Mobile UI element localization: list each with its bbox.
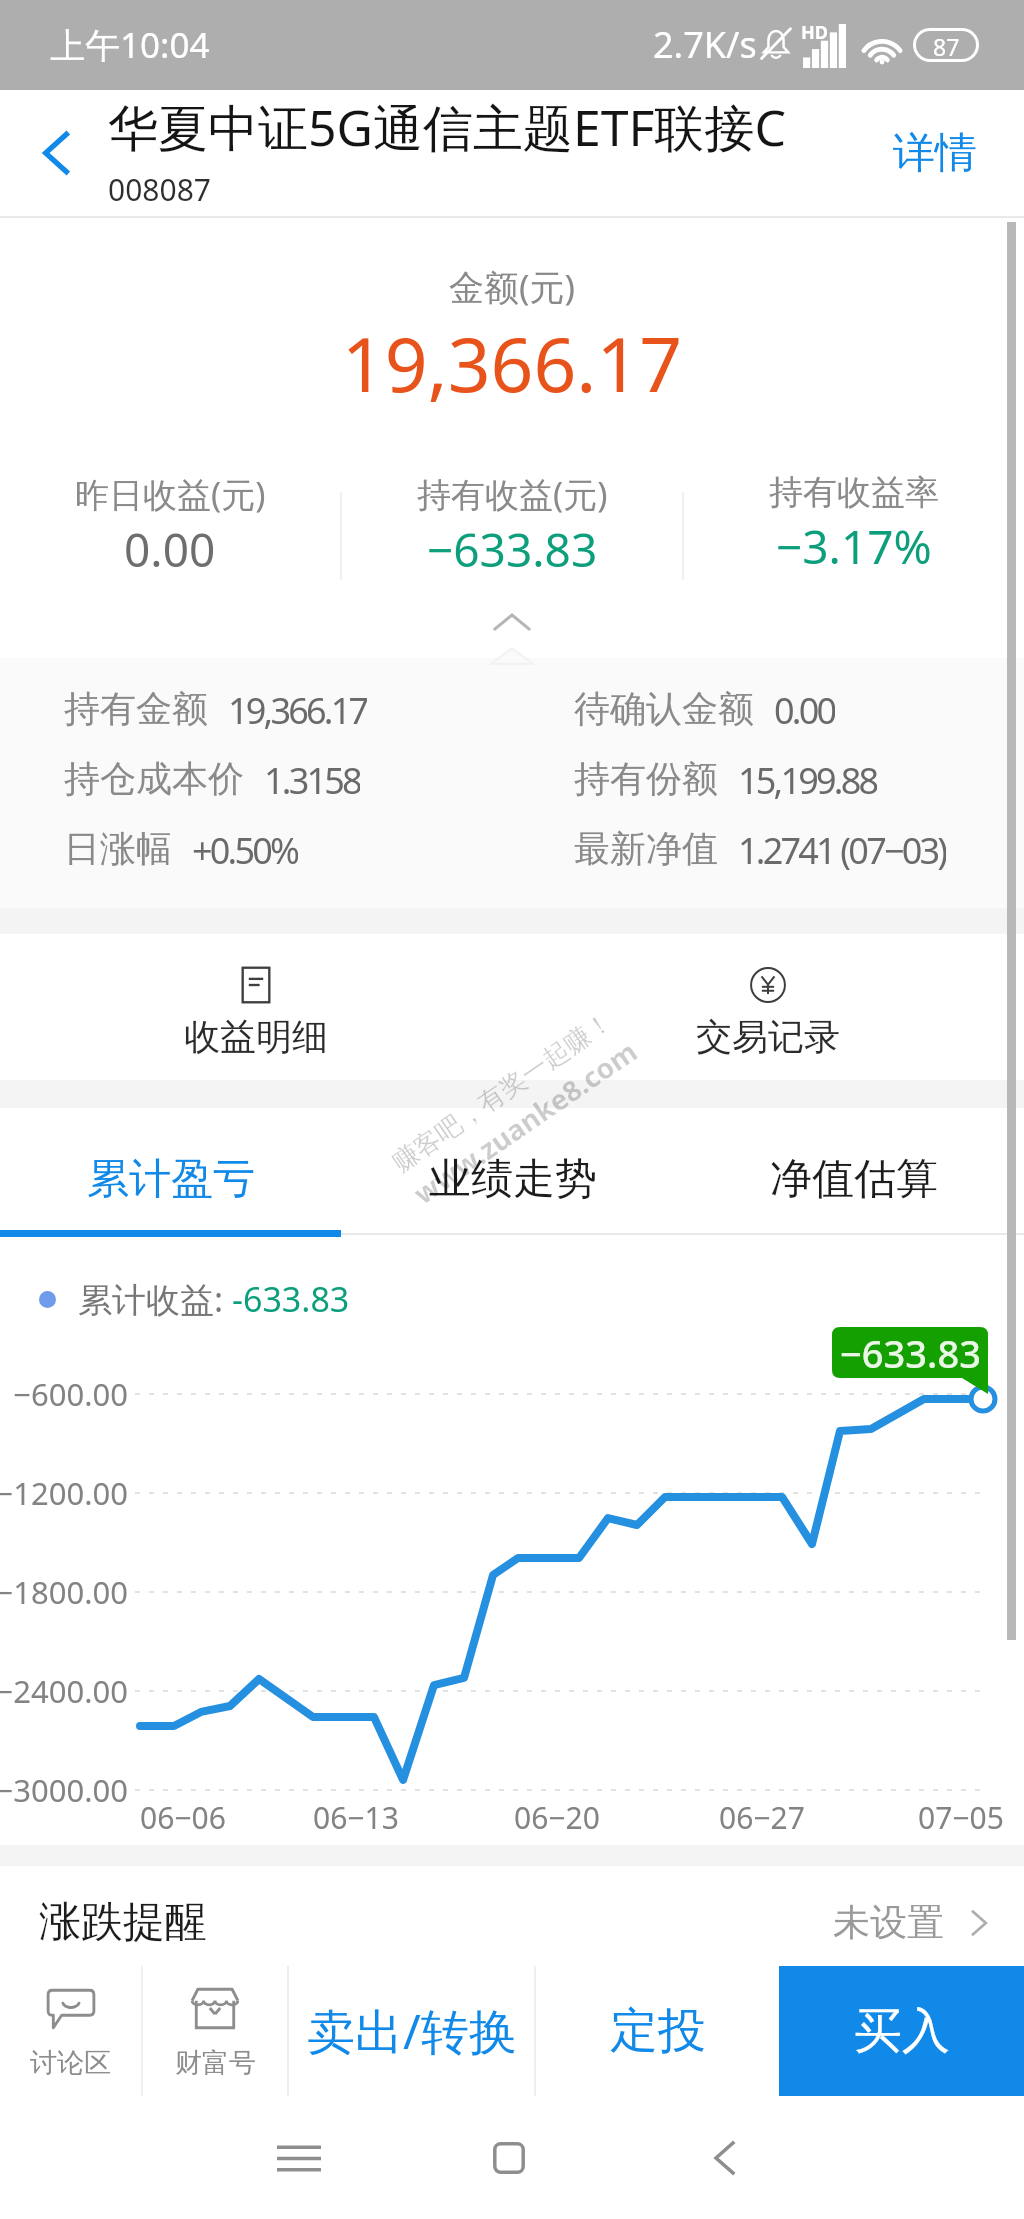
button[interactable]: Back <box>679 2113 769 2203</box>
staticText: 交易记录 <box>696 1014 840 1059</box>
staticText: 未设置 <box>833 1899 944 1946</box>
staticText: www.zuanke8.com <box>406 1032 644 1212</box>
staticText: 持有收益率 <box>769 471 939 514</box>
staticText: 07−05 <box>918 1797 1004 1838</box>
button[interactable]: Recents <box>254 2113 344 2203</box>
staticText: 卖出/转换 <box>307 1998 517 2064</box>
staticText: 定投 <box>610 2001 706 2061</box>
staticText: 持有收益(元) <box>417 471 608 517</box>
button[interactable]: Back <box>0 90 112 216</box>
button[interactable]: 讨论区 <box>0 1966 141 2096</box>
staticText: 业绩走势 <box>429 1153 597 1206</box>
staticText: 1.3158 <box>264 756 360 800</box>
staticText: 净值估算 <box>770 1153 938 1206</box>
staticText: 持有金额 <box>64 686 208 730</box>
staticText: −3000.00 <box>0 1769 128 1811</box>
staticText: 2.7K/s <box>653 20 757 69</box>
staticText: 19,366.17 <box>0 312 1024 414</box>
staticText: 06−27 <box>719 1797 805 1838</box>
staticText: 持有份额 <box>574 756 718 800</box>
staticText: -633.83 <box>232 1276 350 1322</box>
staticText: −2400.00 <box>0 1670 128 1712</box>
staticText: 累计收益: <box>78 1276 232 1322</box>
staticText: −633.83 <box>427 518 598 581</box>
staticText: 持仓成本价 <box>64 756 244 800</box>
staticText: 87 <box>933 31 960 59</box>
staticText: 06−06 <box>140 1797 226 1838</box>
staticText: 0.00 <box>774 686 835 730</box>
staticText: 19,366.17 <box>228 686 367 730</box>
staticText: 详情 <box>893 127 977 180</box>
staticText: 累计盈亏 <box>87 1153 255 1206</box>
staticText: −1200.00 <box>0 1472 128 1514</box>
staticText: 收益明细 <box>184 1014 328 1059</box>
staticText: 1.2741 (07−03) <box>738 826 946 870</box>
button[interactable]: 卖出/转换 <box>289 1966 534 2096</box>
staticText: HD <box>801 20 828 45</box>
staticText: 日涨幅 <box>64 826 172 870</box>
staticText: 0.00 <box>124 518 216 581</box>
staticText: 华夏中证5G通信主题ETF联接C <box>108 93 787 161</box>
staticText: 买入 <box>854 2001 950 2061</box>
staticText: −633.83 <box>840 1327 981 1378</box>
button[interactable]: 净值估算 <box>683 1108 1024 1230</box>
staticText: −3.17% <box>776 515 932 578</box>
button[interactable]: 财富号 <box>143 1966 287 2096</box>
staticText: 15,199.88 <box>738 756 877 800</box>
staticText: 06−20 <box>514 1797 600 1838</box>
staticText: 06−13 <box>313 1797 399 1838</box>
button[interactable]: 累计盈亏 <box>0 1108 342 1230</box>
button[interactable]: 买入 <box>779 1966 1024 2096</box>
staticText: −1800.00 <box>0 1571 128 1613</box>
button[interactable]: 详情 <box>865 107 1024 200</box>
button[interactable]: Home <box>464 2113 554 2203</box>
button[interactable]: 涨跌提醒 <box>0 1866 1024 1966</box>
staticText: 008087 <box>108 169 211 210</box>
button[interactable]: 交易记录 <box>512 934 1024 1080</box>
staticText: 昨日收益(元) <box>75 471 266 517</box>
staticText: 涨跌提醒 <box>39 1896 207 1949</box>
staticText: +0.50% <box>192 826 298 870</box>
staticText: 最新净值 <box>574 826 718 870</box>
staticText: 赚客吧，有奖一起赚！ <box>386 1005 619 1179</box>
staticText: 金额(元) <box>0 263 1024 311</box>
staticText: −600.00 <box>0 1373 128 1415</box>
button[interactable]: 业绩走势 <box>342 1108 683 1230</box>
staticText: 讨论区 <box>30 2046 111 2080</box>
button[interactable]: 收益明细 <box>0 934 512 1080</box>
staticText: 上午10:04 <box>50 21 210 69</box>
staticText: 财富号 <box>175 2046 256 2080</box>
button[interactable]: 定投 <box>536 1966 779 2096</box>
staticText: 待确认金额 <box>574 686 754 730</box>
